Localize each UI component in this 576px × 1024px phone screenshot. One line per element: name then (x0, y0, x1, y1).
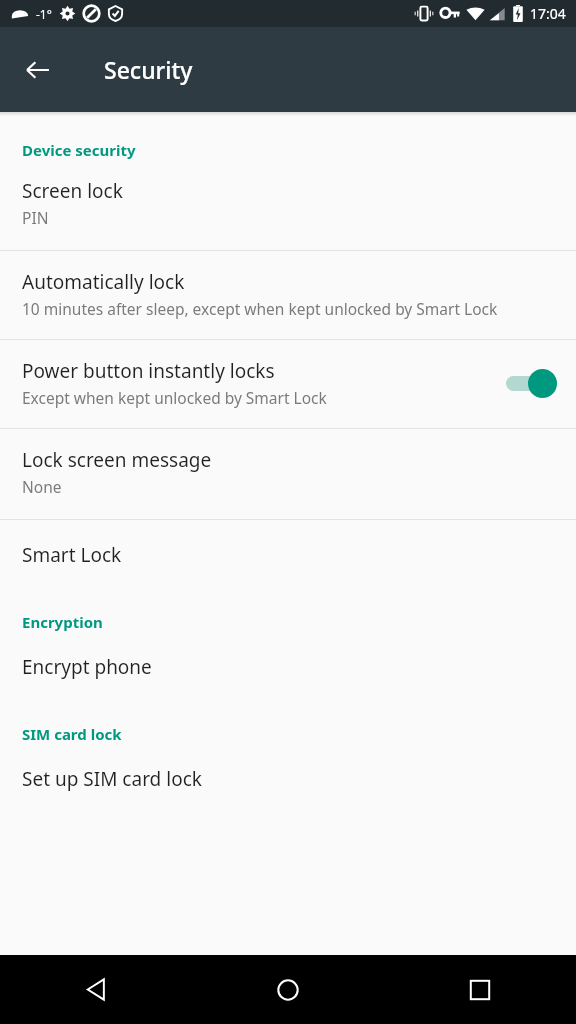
staticText: Except when kept unlocked by Smart Lock (22, 387, 327, 408)
button[interactable]: Smart Lock (0, 520, 576, 590)
staticText: SIM card lock (22, 724, 122, 744)
button[interactable]: Recent apps (384, 955, 576, 1024)
button[interactable]: Encrypt phone (0, 634, 576, 702)
button[interactable]: Automatically lock (0, 251, 576, 339)
staticText: Encrypt phone (22, 654, 152, 680)
staticText: Device security (22, 140, 136, 160)
button[interactable]: Lock screen message (0, 429, 576, 519)
button[interactable]: Power button instantly locks (0, 340, 576, 428)
staticText: Set up SIM card lock (22, 766, 202, 792)
staticText: Power button instantly locks (22, 358, 275, 384)
staticText: -1° (36, 6, 52, 22)
staticText: PIN (22, 207, 49, 228)
staticText: Encryption (22, 612, 103, 632)
staticText: Lock screen message (22, 447, 212, 473)
staticText: 17:04 (530, 4, 566, 23)
button[interactable]: Screen lock (0, 162, 576, 250)
staticText: 10 minutes after sleep, except when kept… (22, 298, 498, 319)
staticText: Automatically lock (22, 269, 185, 295)
staticText: None (22, 476, 62, 497)
button[interactable]: Back (10, 42, 66, 98)
button[interactable]: Home (192, 955, 384, 1024)
staticText: Screen lock (22, 178, 123, 204)
button[interactable]: Back (0, 955, 192, 1024)
button[interactable]: Set up SIM card lock (0, 746, 576, 814)
staticText: Security (104, 54, 193, 85)
staticText: Smart Lock (22, 542, 122, 568)
